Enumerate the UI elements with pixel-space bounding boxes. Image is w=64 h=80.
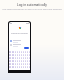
button[interactable] — [29, 57, 30, 59]
button[interactable] — [10, 39, 29, 43]
button[interactable] — [25, 51, 26, 53]
button[interactable] — [23, 51, 24, 53]
button[interactable] — [15, 66, 16, 68]
button[interactable] — [25, 54, 26, 56]
button[interactable] — [23, 63, 24, 65]
button[interactable] — [17, 66, 18, 68]
button[interactable] — [17, 63, 18, 65]
button[interactable] — [12, 57, 14, 59]
button[interactable] — [12, 54, 14, 56]
button[interactable] — [15, 57, 16, 59]
button[interactable] — [23, 54, 24, 56]
button[interactable] — [19, 60, 20, 62]
button[interactable] — [27, 51, 28, 53]
button[interactable] — [12, 60, 14, 62]
button[interactable] — [19, 51, 20, 53]
button[interactable] — [19, 57, 20, 59]
button[interactable] — [23, 60, 24, 62]
button[interactable] — [17, 51, 18, 53]
button[interactable] — [23, 66, 24, 68]
button[interactable] — [27, 60, 28, 62]
button[interactable] — [25, 66, 26, 68]
staticText: Choose an account — [11, 32, 28, 35]
button[interactable] — [15, 51, 16, 53]
staticText: Log in automatically — [17, 3, 47, 7]
button[interactable] — [25, 57, 26, 59]
button[interactable] — [29, 63, 30, 65]
button[interactable] — [21, 66, 22, 68]
button[interactable] — [9, 60, 11, 62]
button[interactable] — [17, 54, 18, 56]
button[interactable] — [10, 43, 29, 47]
button[interactable]: Continue — [24, 47, 29, 49]
button[interactable] — [21, 51, 22, 53]
button[interactable] — [27, 54, 28, 56]
button[interactable] — [29, 66, 30, 68]
button[interactable] — [19, 66, 20, 68]
button[interactable] — [29, 54, 30, 56]
button[interactable] — [9, 63, 11, 65]
button[interactable] — [19, 63, 20, 65]
button[interactable] — [27, 63, 28, 65]
button[interactable] — [27, 66, 28, 68]
button[interactable] — [29, 60, 30, 62]
button[interactable] — [15, 63, 16, 65]
button[interactable] — [12, 66, 14, 68]
button[interactable] — [12, 63, 14, 65]
button[interactable] — [27, 57, 28, 59]
button[interactable] — [9, 57, 11, 59]
button[interactable] — [21, 54, 22, 56]
button[interactable] — [9, 51, 11, 53]
button[interactable] — [21, 60, 22, 62]
button[interactable] — [25, 60, 26, 62]
button[interactable] — [23, 57, 24, 59]
button[interactable] — [21, 57, 22, 59]
button[interactable] — [9, 66, 11, 68]
button[interactable] — [25, 63, 26, 65]
staticText: Use saved passwords to sign in to your a… — [2, 8, 62, 11]
button[interactable] — [21, 63, 22, 65]
button[interactable] — [29, 51, 30, 53]
button[interactable] — [12, 51, 14, 53]
button[interactable] — [17, 60, 18, 62]
button[interactable] — [15, 60, 16, 62]
button[interactable] — [17, 57, 18, 59]
button[interactable] — [19, 54, 20, 56]
button[interactable] — [9, 54, 11, 56]
button[interactable] — [15, 54, 16, 56]
